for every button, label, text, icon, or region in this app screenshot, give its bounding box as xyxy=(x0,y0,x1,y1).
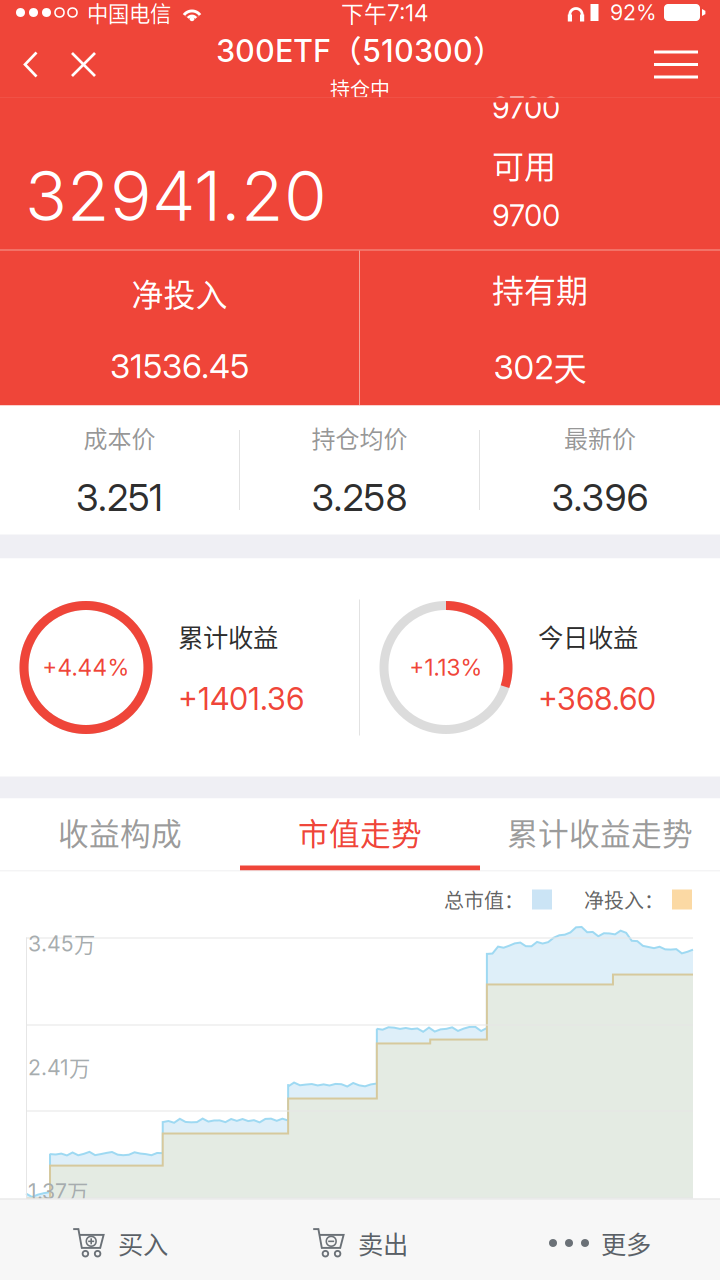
staticText: +4.44% xyxy=(42,654,129,681)
staticText: 可用 xyxy=(492,141,556,188)
staticText: 302天 xyxy=(493,342,586,390)
staticText: 32941.20 xyxy=(25,153,327,237)
staticText: 累计收益 xyxy=(178,618,278,654)
staticText: 总市值： xyxy=(444,885,524,914)
staticText: 净投入： xyxy=(584,885,664,914)
staticText: 累计收益走势 xyxy=(507,810,693,854)
staticText: 持仓均价 xyxy=(311,420,407,455)
staticText: +1401.36 xyxy=(178,680,304,717)
staticText: 1.37万 xyxy=(28,1175,88,1206)
staticText: 净投入 xyxy=(131,270,227,316)
staticText: +368.60 xyxy=(538,680,656,717)
staticText: 下午7:14 xyxy=(341,0,429,29)
staticText: 成本价 xyxy=(83,420,155,455)
button[interactable]: 收益构成 xyxy=(0,798,240,870)
staticText: 2.41万 xyxy=(28,1052,90,1082)
staticText: 今日收益 xyxy=(538,618,638,654)
button[interactable]: Back xyxy=(0,36,56,92)
staticText: 持仓中 xyxy=(330,74,390,103)
button[interactable]: 买入 xyxy=(0,1199,240,1280)
staticText: 3.396 xyxy=(551,475,648,520)
button[interactable]: 市值走势 xyxy=(240,798,480,870)
button[interactable]: 更多 xyxy=(480,1199,720,1280)
staticText: 9700 xyxy=(492,198,560,233)
staticText: 92% xyxy=(610,0,657,25)
staticText: 300ETF（510300） xyxy=(216,26,504,71)
staticText: 持有期 xyxy=(492,266,588,312)
button[interactable]: Menu xyxy=(636,36,720,92)
button[interactable]: Close xyxy=(56,36,111,93)
staticText: 最新价 xyxy=(564,420,636,455)
staticText: 3.251 xyxy=(76,475,163,520)
staticText: 31536.45 xyxy=(110,346,249,386)
button[interactable]: 卖出 xyxy=(240,1199,480,1280)
staticText: 收益构成 xyxy=(58,810,182,854)
button[interactable]: 累计收益走势 xyxy=(480,798,720,870)
staticText: 更多 xyxy=(601,1225,651,1261)
staticText: 中国电信 xyxy=(87,0,171,28)
staticText: 买入 xyxy=(118,1225,168,1261)
staticText: 9700 xyxy=(492,90,560,125)
staticText: 市值走势 xyxy=(298,810,422,854)
staticText: 3.258 xyxy=(311,475,407,520)
staticText: 3.45万 xyxy=(28,928,95,959)
staticText: 卖出 xyxy=(358,1225,408,1261)
staticText: +1.13% xyxy=(409,654,482,681)
